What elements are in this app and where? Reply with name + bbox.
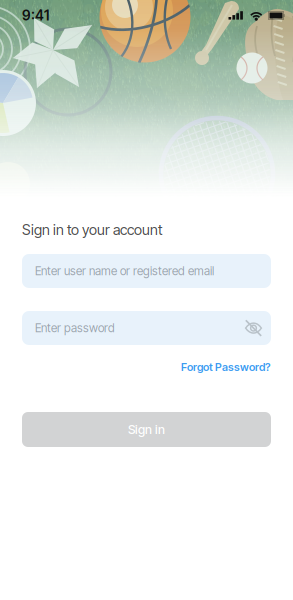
button[interactable]: Enter user name or registered email (22, 254, 271, 288)
button[interactable]: Forgot Password? (22, 360, 271, 374)
button[interactable]: Sign in (22, 412, 271, 447)
button[interactable]: Enter password (22, 311, 271, 345)
staticText: Forgot Password? (181, 360, 271, 374)
staticText: Sign in (128, 422, 165, 437)
staticText: Sign in to your account (22, 221, 163, 238)
staticText: Enter user name or registered email (35, 264, 214, 278)
staticText: 9:41 (22, 7, 49, 24)
staticText: Enter password (35, 321, 115, 335)
